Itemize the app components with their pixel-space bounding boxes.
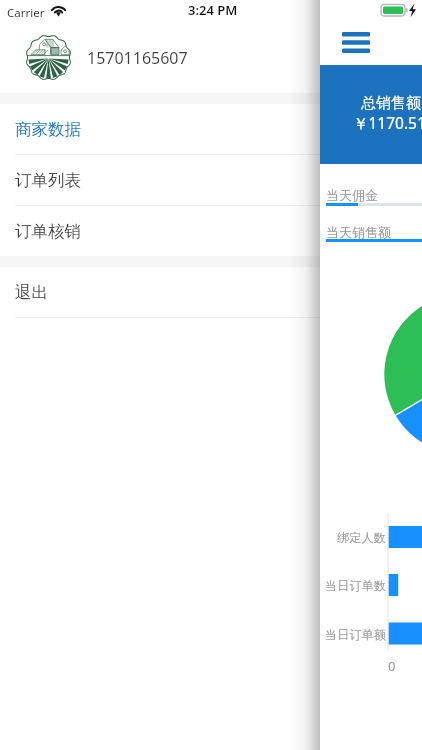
button[interactable]: 15701165607 [0,22,320,93]
staticText: 当日订单数 [325,578,386,593]
staticText: 订单列表 [15,170,81,191]
staticText: 0 [388,657,396,675]
button[interactable]: 商家数据 [0,104,320,154]
staticText: 当天佣金 [326,187,378,203]
staticText: 3:24 PM [188,1,238,19]
staticText: ￥1170.51 [353,112,422,133]
button[interactable]: Menu [342,32,370,53]
staticText: Carrier [7,5,45,21]
staticText: 总销售额 [361,94,421,113]
staticText: 当日订单额 [325,627,386,642]
staticText: 15701165607 [87,47,188,69]
staticText: 当天销售额 [326,224,391,240]
button[interactable]: 订单列表 [0,155,320,205]
staticText: 订单核销 [15,221,81,242]
button[interactable]: 订单核销 [0,206,320,256]
button[interactable]: 退出 [0,267,320,317]
staticText: 绑定人数 [337,530,386,545]
staticText: 商家数据 [15,119,81,140]
staticText: 退出 [15,282,48,303]
